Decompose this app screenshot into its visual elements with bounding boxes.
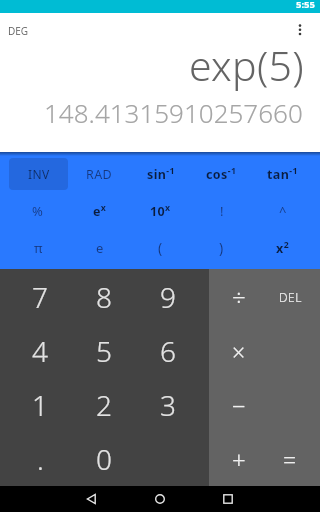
staticText: ) [219,238,224,257]
staticText: exp(5) [189,37,304,93]
button[interactable]: + [213,432,264,486]
staticText: × [232,336,246,367]
button[interactable]: e [69,229,130,266]
button[interactable]: − [213,378,264,432]
staticText: 2 [96,386,112,424]
staticText: DEL [279,289,302,305]
staticText: x2 [276,239,290,257]
staticText: 8 [96,278,112,316]
button[interactable]: ( [130,229,191,266]
button[interactable]: ÷ [213,269,264,324]
button[interactable]: sin-1 [130,156,191,192]
staticText: ( [158,238,163,257]
staticText: = [283,444,297,475]
staticText: cos-1 [206,165,237,183]
staticText: tan-1 [267,165,298,183]
button[interactable]: 7 [8,269,72,324]
button[interactable] [78,486,106,512]
button[interactable]: cos-1 [191,156,252,192]
staticText: 0 [96,440,112,478]
button[interactable]: 5 [72,324,136,378]
button[interactable]: 6 [136,324,200,378]
button[interactable]: INV [9,158,68,190]
staticText: DEG [8,24,29,38]
staticText: ^ [279,202,287,220]
button[interactable]: 0 [72,432,136,486]
staticText: % [32,202,44,220]
button[interactable]: ) [191,229,252,266]
staticText: sin-1 [147,165,175,183]
button[interactable]: % [7,192,69,229]
staticText: + [232,443,246,476]
button[interactable]: DEL [264,269,316,324]
staticText: − [232,389,246,422]
button[interactable]: RAD [69,156,130,192]
staticText: ex [93,202,107,220]
button[interactable]: 4 [8,324,72,378]
staticText: 5:55 [296,0,315,11]
staticText: INV [28,166,50,182]
button[interactable]: × [213,324,264,378]
staticText: 3 [160,386,176,424]
button[interactable] [280,13,320,47]
button[interactable]: 10x [130,192,191,229]
staticText: 6 [160,332,176,370]
button[interactable]: 3 [136,378,200,432]
button[interactable] [214,486,242,512]
button[interactable] [146,486,174,512]
button[interactable]: x2 [252,229,313,266]
button[interactable]: = [264,432,316,486]
staticText: π [34,239,43,257]
button[interactable]: ex [69,192,130,229]
button[interactable]: π [7,229,69,266]
button[interactable]: ! [191,192,252,229]
button[interactable]: . [8,432,72,486]
staticText: ÷ [232,280,246,313]
staticText: RAD [86,166,113,183]
button[interactable]: 1 [8,378,72,432]
staticText: 5 [96,332,112,370]
button[interactable]: 9 [136,269,200,324]
button[interactable]: 2 [72,378,136,432]
staticText: 10x [150,202,171,220]
button[interactable]: tan-1 [252,156,313,192]
staticText: . [37,440,44,478]
staticText: 148.41315910257660 [44,95,303,130]
button[interactable]: 8 [72,269,136,324]
staticText: 1 [32,386,48,424]
staticText: e [96,239,104,257]
staticText: 4 [32,332,48,370]
staticText: ! [220,202,224,220]
button[interactable]: ^ [252,192,313,229]
staticText: 7 [32,278,48,316]
staticText: 9 [160,278,176,316]
